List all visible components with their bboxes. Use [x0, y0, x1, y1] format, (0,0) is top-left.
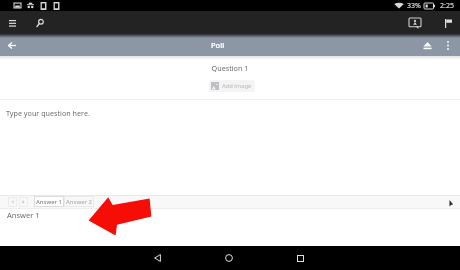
button[interactable]: Recents — [288, 246, 312, 270]
staticText: Question 1 — [0, 63, 460, 73]
button[interactable]: Previous — [8, 197, 17, 207]
button[interactable]: Flag — [441, 16, 455, 30]
button[interactable]: Next — [19, 197, 28, 207]
staticText: Add image — [222, 82, 252, 90]
button[interactable]: Comments — [407, 15, 423, 31]
button[interactable]: Back — [145, 246, 169, 270]
staticText: Poll — [211, 40, 225, 50]
staticText: 33% — [407, 1, 421, 11]
button[interactable]: Search — [33, 16, 47, 30]
button[interactable]: Menu — [5, 16, 19, 30]
button[interactable]: Back — [4, 37, 20, 53]
button[interactable]: Add image — [209, 80, 255, 92]
button[interactable]: More options — [442, 39, 454, 51]
staticText: Answer 1 — [7, 210, 40, 220]
button[interactable]: Publish — [420, 38, 434, 52]
staticText: Answer 2 — [66, 198, 92, 206]
staticText: Type your question here. — [6, 108, 90, 118]
button[interactable]: Home — [217, 246, 241, 270]
staticText: Answer 1 — [36, 198, 62, 206]
button[interactable]: Answer 2 — [64, 196, 94, 207]
staticText: 2:25 — [440, 1, 454, 11]
button[interactable]: Answer 1 — [34, 196, 64, 207]
